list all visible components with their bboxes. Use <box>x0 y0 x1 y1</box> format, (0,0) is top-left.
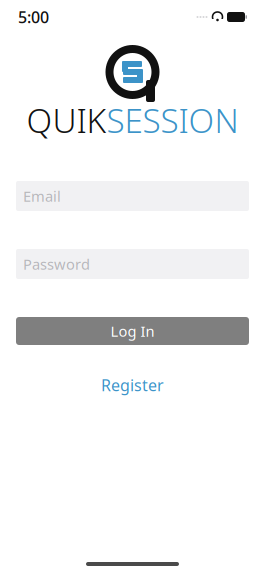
staticText: Log In <box>110 321 154 341</box>
staticText: SESSION <box>106 98 238 142</box>
staticText: Email <box>23 186 61 206</box>
button[interactable]: Log In <box>16 317 249 345</box>
button[interactable]: Register <box>16 375 249 395</box>
staticText: QUIK <box>26 98 106 142</box>
staticText: Register <box>101 374 164 396</box>
staticText: 5:00 <box>18 6 49 28</box>
staticText: Password <box>23 254 90 274</box>
